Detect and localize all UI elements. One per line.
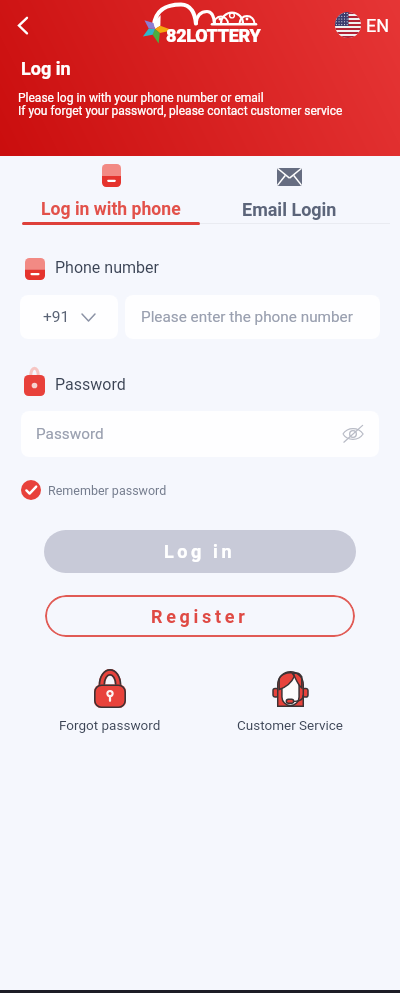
button[interactable]: Log in with phone [0,156,200,224]
staticText: Please enter the phone number [141,308,353,326]
staticText: Phone number [55,258,159,277]
staticText: 82LOTTERY [166,25,261,46]
button[interactable]: Log in [44,530,356,573]
button[interactable]: Forgot password [50,670,170,733]
staticText: Forgot password [59,717,161,733]
button[interactable]: Customer Service [230,671,350,733]
button[interactable]: Password [21,411,379,457]
staticText: Customer Service [237,717,344,733]
staticText: Password [55,375,126,394]
button[interactable]: Remember password [21,480,167,500]
staticText: Log in [164,541,236,562]
button[interactable]: Show password [341,422,365,446]
button[interactable]: Back [9,10,39,40]
staticText: +91 [43,308,70,326]
staticText: If you forget your password, please cont… [18,104,343,118]
button[interactable]: Please enter the phone number [125,295,380,339]
staticText: Remember password [48,483,167,498]
staticText: Please log in with your phone number or … [18,91,264,105]
staticText: Log in with phone [41,199,181,220]
button[interactable]: Email Login [200,156,400,224]
button[interactable]: EN [335,12,390,38]
staticText: EN [366,15,390,36]
button[interactable]: Register [45,595,355,637]
staticText: Email Login [242,199,337,220]
staticText: Log in [21,58,71,79]
button[interactable]: +91 [20,295,118,339]
staticText: Password [36,425,104,443]
staticText: Register [151,606,249,627]
